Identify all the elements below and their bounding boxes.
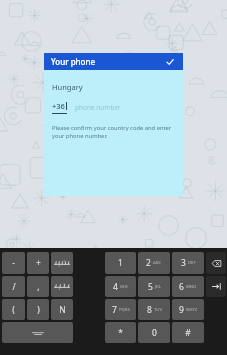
staticText: ( xyxy=(12,304,15,316)
button[interactable]: Tab xyxy=(206,276,226,297)
button[interactable]: 7 xyxy=(105,299,136,320)
staticText: WXYZ xyxy=(186,307,198,313)
staticText: / xyxy=(12,281,16,293)
staticText: ABC xyxy=(153,260,162,266)
button[interactable]: Symbol xyxy=(51,276,73,297)
staticText: JKL xyxy=(155,284,161,290)
button[interactable]: Backspace xyxy=(206,252,226,274)
button[interactable]: * xyxy=(105,322,136,343)
staticText: 1 xyxy=(118,257,123,269)
staticText: # xyxy=(185,327,191,339)
staticText: Please confirm your country code and ent… xyxy=(52,124,175,140)
staticText: DEF xyxy=(188,260,196,266)
staticText: + xyxy=(36,257,41,269)
staticText: Your phone xyxy=(51,56,96,67)
staticText: 4 xyxy=(113,281,118,293)
button[interactable]: 4 xyxy=(105,276,136,297)
button[interactable]: Hungary xyxy=(44,82,183,92)
button[interactable]: + xyxy=(27,252,49,274)
staticText: 7 xyxy=(112,304,117,316)
staticText: 2 xyxy=(146,257,151,269)
staticText: ) xyxy=(37,304,40,316)
staticText: 0 xyxy=(152,327,157,339)
button[interactable]: 9 xyxy=(172,299,204,320)
button[interactable]: 0 xyxy=(138,322,170,343)
button[interactable]: Symbol xyxy=(51,252,73,274)
staticText: GHI xyxy=(120,284,128,290)
button[interactable]: # xyxy=(172,322,204,343)
staticText: N xyxy=(59,304,66,316)
staticText: MNO xyxy=(186,284,197,290)
staticText: Hungary xyxy=(52,82,83,92)
staticText: PQRS xyxy=(119,307,130,313)
staticText: 3 xyxy=(181,257,186,269)
button[interactable]: / xyxy=(2,276,25,297)
staticText: 9 xyxy=(179,304,184,316)
button[interactable]: ( xyxy=(2,299,25,320)
staticText: 8 xyxy=(147,304,152,316)
staticText: +36 xyxy=(52,101,65,111)
staticText: , xyxy=(37,281,40,293)
staticText: 5 xyxy=(148,281,153,293)
staticText: - xyxy=(12,257,15,269)
staticText: 6 xyxy=(179,281,184,293)
button[interactable]: 1 xyxy=(105,252,136,274)
button[interactable]: Space xyxy=(2,322,73,343)
button[interactable]: +36 xyxy=(44,101,183,114)
button[interactable]: 6 xyxy=(172,276,204,297)
button[interactable]: ) xyxy=(27,299,49,320)
staticText: * xyxy=(118,327,123,339)
button[interactable]: Your phone xyxy=(44,53,183,70)
button[interactable]: Confirm xyxy=(164,56,176,68)
button[interactable]: , xyxy=(27,276,49,297)
button[interactable]: 8 xyxy=(138,299,170,320)
button[interactable]: 2 xyxy=(138,252,170,274)
staticText: phone number xyxy=(75,103,121,112)
staticText: TUV xyxy=(154,307,162,313)
button[interactable]: N xyxy=(51,299,73,320)
button[interactable]: 3 xyxy=(172,252,204,274)
button[interactable]: - xyxy=(2,252,25,274)
button[interactable]: 5 xyxy=(138,276,170,297)
